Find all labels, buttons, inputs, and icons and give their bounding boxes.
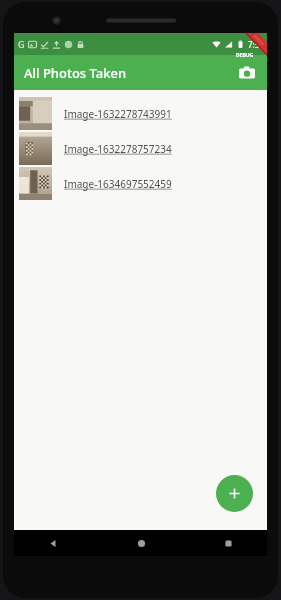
- button[interactable]: Image-1632278743991: [14, 96, 267, 131]
- button[interactable]: Home: [128, 530, 154, 556]
- staticText: Image-1634697552459: [64, 177, 172, 191]
- button[interactable]: Take photo: [233, 59, 261, 87]
- button[interactable]: Back: [40, 530, 66, 556]
- staticText: DEBUG: [236, 52, 254, 59]
- button[interactable]: Add photo: [216, 475, 253, 512]
- staticText: G: [18, 38, 25, 50]
- staticText: All Photos Taken: [24, 64, 127, 82]
- button[interactable]: Image-1634697552459: [14, 166, 267, 201]
- staticText: Image-1632278743991: [64, 107, 172, 121]
- button[interactable]: Recent apps: [215, 530, 241, 556]
- staticText: Image-1632278757234: [64, 142, 172, 156]
- button[interactable]: Image-1632278757234: [14, 131, 267, 166]
- staticText: 7:56: [248, 39, 264, 50]
